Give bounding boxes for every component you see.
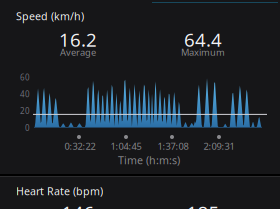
staticText: Average <box>60 46 96 58</box>
staticText: 146 <box>61 200 94 209</box>
staticText: 1:37:08 <box>157 140 188 152</box>
staticText: 0:32:22 <box>64 140 95 152</box>
staticText: 40 <box>20 89 30 99</box>
staticText: 1:04:45 <box>110 140 141 152</box>
staticText: 0 <box>25 122 30 133</box>
staticText: 16.2 <box>59 27 97 52</box>
staticText: Time (h:m:s) <box>118 153 180 167</box>
staticText: Heart Rate (bpm) <box>16 184 103 198</box>
staticText: Maximum <box>181 46 225 58</box>
staticText: 20 <box>20 106 30 116</box>
staticText: 2:09:31 <box>203 140 234 152</box>
staticText: 60 <box>20 72 30 83</box>
staticText: 185 <box>186 200 219 209</box>
staticText: 64.4 <box>184 27 222 52</box>
staticText: Speed (km/h) <box>16 9 84 23</box>
